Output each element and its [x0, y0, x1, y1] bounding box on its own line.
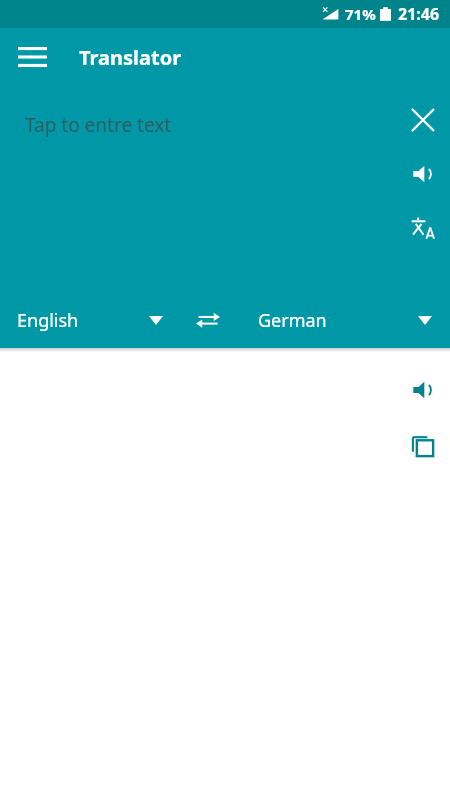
- button[interactable]: Copy translation: [399, 422, 447, 470]
- staticText: German: [258, 308, 327, 333]
- button[interactable]: Open navigation menu: [8, 33, 56, 81]
- button[interactable]: Tap to entre text: [0, 86, 450, 286]
- staticText: 71%: [345, 4, 376, 24]
- button[interactable]: Speak translation: [399, 366, 447, 414]
- staticText: Translator: [79, 44, 182, 71]
- button[interactable]: English: [0, 295, 185, 345]
- button[interactable]: Clear text: [399, 96, 447, 144]
- staticText: English: [17, 308, 79, 333]
- staticText: 21:46: [398, 3, 440, 25]
- button[interactable]: Swap languages: [185, 297, 231, 343]
- button[interactable]: Translate: [399, 204, 447, 252]
- staticText: Tap to entre text: [25, 112, 172, 138]
- button[interactable]: German: [231, 295, 450, 345]
- button[interactable]: Speak source text: [399, 150, 447, 198]
